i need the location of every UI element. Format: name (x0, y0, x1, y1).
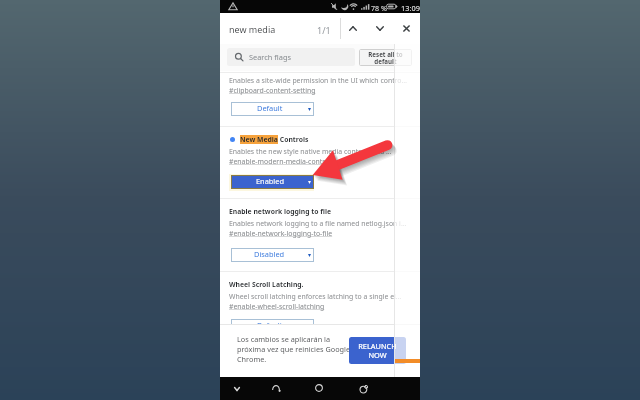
button[interactable]: Default (231, 102, 314, 116)
button[interactable]: Recent apps (352, 377, 376, 400)
button[interactable]: Default (231, 319, 314, 333)
staticText: Default (257, 103, 283, 113)
staticText: Default (257, 320, 283, 330)
staticText: Wheel scroll latching enforces latching … (229, 292, 402, 301)
staticText: RELAUNCH NOW (357, 341, 398, 361)
button[interactable]: Hide keyboard (225, 377, 249, 400)
button[interactable]: Disabled (231, 248, 314, 262)
button[interactable]: Search flags (227, 48, 355, 66)
staticText: #enable-modern-media-contro… (229, 157, 335, 166)
button[interactable]: Next result (367, 15, 393, 41)
staticText: Enabled (256, 176, 284, 186)
button[interactable]: Previous result (340, 15, 366, 41)
staticText: Controls (278, 135, 309, 144)
staticText: Disabled (254, 249, 285, 259)
staticText: Enable network logging to file (229, 207, 332, 216)
button[interactable]: Enabled (231, 175, 314, 189)
staticText: #clipboard-content-setting (229, 86, 316, 95)
staticText: #enable-wheel-scroll-latching (229, 302, 325, 311)
staticText: Wheel Scroll Latching. (229, 280, 304, 289)
staticText: Enables the new style native media contr… (229, 147, 392, 156)
staticText: new media (229, 23, 276, 35)
button[interactable]: Close find bar (393, 15, 419, 41)
staticText: Enables a site-wide permission in the UI… (229, 76, 407, 85)
staticText: #enable-network-logging-to-file (229, 229, 333, 238)
button[interactable]: RELAUNCH NOW (349, 337, 406, 364)
staticText: 1/1 (317, 24, 331, 36)
staticText: New Media (240, 135, 278, 144)
button[interactable]: Reset all to default (359, 49, 412, 66)
button[interactable]: Home (307, 376, 331, 400)
button[interactable]: Back (264, 376, 288, 400)
staticText: Reset all to default (361, 50, 410, 65)
staticText: Enables network logging to a file named … (229, 219, 407, 228)
staticText: Search flags (249, 52, 291, 62)
staticText: 13:09 (401, 3, 420, 13)
staticText: 78 % (371, 3, 387, 13)
staticText: Los cambios se aplicarán la próxima vez … (237, 334, 351, 364)
